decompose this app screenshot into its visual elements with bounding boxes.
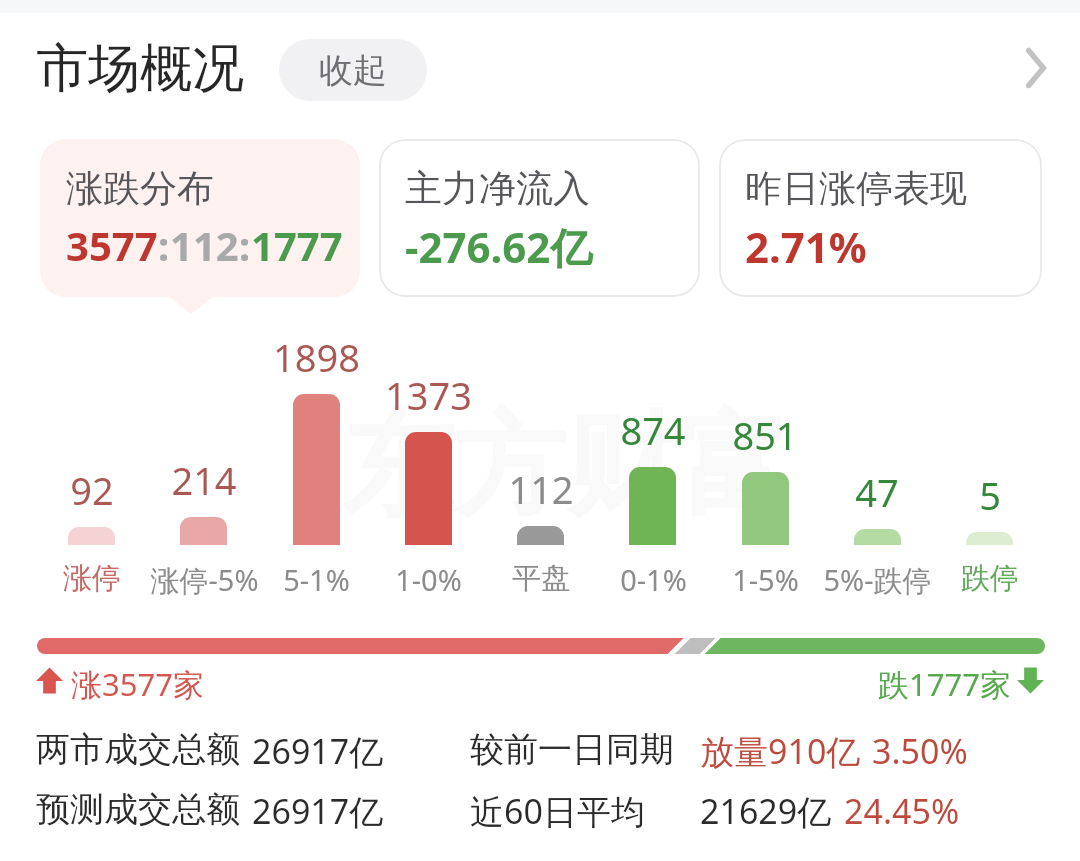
staticText: 0-1%: [620, 560, 687, 599]
staticText: 21629亿: [700, 788, 832, 834]
staticText: 近60日平均: [470, 788, 645, 834]
staticText: 5: [979, 469, 1001, 521]
button[interactable]: 涨停-5% 214: [180, 517, 227, 545]
button[interactable]: 平盘 112: [517, 526, 564, 545]
button[interactable]: 主力净流入: [379, 139, 700, 297]
staticText: 3577: [66, 218, 158, 272]
staticText: 涨停-5%: [150, 560, 259, 600]
staticText: 1373: [385, 369, 472, 421]
staticText: 市场概况: [36, 36, 244, 102]
button[interactable]: 5-1% 1898: [293, 394, 340, 545]
staticText: 214: [171, 454, 237, 506]
staticText: 平盘: [512, 560, 570, 597]
button[interactable]: 1-0% 1373: [405, 432, 452, 545]
staticText: 1-5%: [732, 560, 799, 599]
staticText: 1898: [273, 331, 360, 383]
staticText: 851: [732, 409, 798, 461]
button[interactable]: More market overview: [1000, 32, 1072, 104]
staticText: 3.50%: [872, 728, 968, 774]
staticText: -276.62亿: [405, 218, 593, 275]
staticText: 较前一日同期: [470, 728, 674, 771]
staticText: 92: [70, 464, 114, 516]
staticText: 5%-跌停: [823, 560, 932, 600]
button[interactable]: 跌停 5: [966, 532, 1013, 545]
staticText: 两市成交总额: [36, 728, 240, 771]
staticText: 主力净流入: [405, 165, 590, 212]
staticText: 昨日涨停表现: [745, 165, 967, 212]
staticText: 1-0%: [395, 560, 462, 599]
staticText: 涨跌分布: [66, 165, 214, 212]
staticText: 放量910亿: [700, 728, 861, 774]
button[interactable]: 昨日涨停表现: [719, 139, 1042, 297]
staticText: 5-1%: [283, 560, 350, 599]
staticText: 收起: [319, 49, 387, 92]
staticText: 26917亿: [252, 788, 384, 834]
staticText: 东方财富: [342, 396, 790, 537]
button[interactable]: 1-5% 851: [742, 472, 789, 545]
staticText: 1777: [251, 218, 343, 272]
staticText: 预测成交总额: [36, 788, 240, 831]
staticText: 跌停: [961, 560, 1019, 597]
button[interactable]: 5%-跌停 47: [854, 529, 901, 545]
staticText: 涨停: [63, 560, 121, 597]
staticText: :: [158, 218, 170, 272]
staticText: 2.71%: [745, 218, 867, 275]
staticText: :: [239, 218, 251, 272]
button[interactable]: 涨停 92: [68, 527, 115, 545]
button[interactable]: 收起: [279, 39, 427, 101]
staticText: 874: [620, 404, 686, 456]
staticText: 涨3577家: [71, 663, 204, 705]
staticText: 跌1777家: [878, 663, 1011, 705]
button[interactable]: 涨跌分布: [40, 139, 360, 297]
staticText: 112: [508, 463, 574, 515]
staticText: 24.45%: [844, 788, 960, 834]
staticText: 47: [855, 466, 899, 518]
button[interactable]: 0-1% 874: [629, 467, 676, 545]
staticText: 112: [170, 218, 239, 272]
staticText: 26917亿: [252, 728, 384, 774]
